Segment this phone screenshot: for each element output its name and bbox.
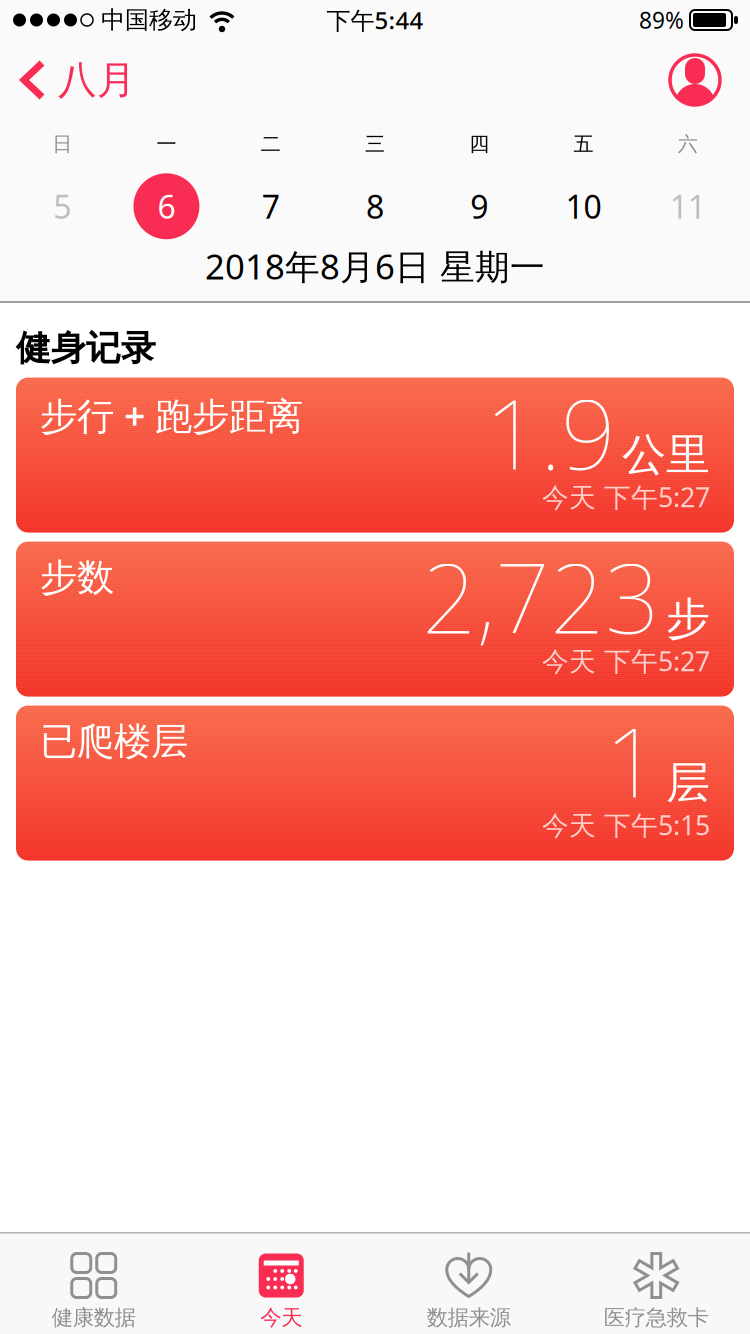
staticText: 层 bbox=[666, 756, 710, 810]
staticText: 步行 + 跑步距离 bbox=[40, 391, 303, 440]
staticText: 11 bbox=[670, 185, 706, 227]
staticText: 日 bbox=[52, 132, 72, 156]
staticText: 下午5:44 bbox=[326, 4, 423, 36]
staticText: 1.9 bbox=[485, 369, 616, 496]
button[interactable]: 医疗急救卡 bbox=[562, 1253, 750, 1331]
staticText: 9 bbox=[470, 185, 488, 227]
button[interactable]: 五 bbox=[531, 121, 636, 239]
staticText: 2,723 bbox=[422, 533, 660, 660]
staticText: 五 bbox=[574, 132, 594, 156]
staticText: 公里 bbox=[622, 428, 710, 482]
button[interactable]: 今天 bbox=[187, 1253, 375, 1331]
staticText: 二 bbox=[261, 132, 281, 156]
staticText: 八月 bbox=[58, 56, 136, 104]
button[interactable]: 健康数据 bbox=[0, 1253, 187, 1331]
button[interactable]: 健康资料 bbox=[670, 55, 750, 105]
staticText: 健康数据 bbox=[52, 1304, 136, 1331]
staticText: 四 bbox=[469, 132, 489, 156]
button[interactable]: 数据来源 bbox=[375, 1253, 562, 1331]
staticText: 今天 下午5:27 bbox=[542, 479, 710, 515]
button[interactable]: 一 bbox=[114, 121, 219, 239]
staticText: 中国移动 bbox=[101, 5, 197, 35]
staticText: 5 bbox=[53, 185, 71, 227]
staticText: 步数 bbox=[40, 555, 114, 600]
staticText: 三 bbox=[365, 132, 385, 156]
staticText: 6 bbox=[157, 185, 175, 227]
staticText: 步 bbox=[666, 592, 710, 646]
button[interactable]: 日 bbox=[10, 121, 114, 239]
button[interactable]: 步行 + 跑步距离 bbox=[0, 378, 750, 533]
staticText: 8 bbox=[366, 185, 384, 227]
button[interactable]: 三 bbox=[323, 121, 427, 239]
staticText: 10 bbox=[566, 185, 602, 227]
button[interactable]: 步数 bbox=[0, 542, 750, 697]
staticText: 一 bbox=[156, 132, 176, 156]
staticText: 1 bbox=[605, 697, 660, 824]
button[interactable]: 二 bbox=[219, 121, 323, 239]
staticText: 7 bbox=[262, 185, 280, 227]
staticText: 今天 下午5:15 bbox=[542, 807, 710, 843]
staticText: 已爬楼层 bbox=[40, 719, 188, 764]
button[interactable]: 四 bbox=[427, 121, 531, 239]
staticText: 医疗急救卡 bbox=[604, 1304, 709, 1331]
staticText: 89% bbox=[639, 5, 684, 35]
staticText: 数据来源 bbox=[427, 1304, 511, 1331]
staticText: 健身记录 bbox=[16, 327, 156, 370]
button[interactable]: 八月 bbox=[0, 56, 136, 104]
button[interactable]: 六 bbox=[636, 121, 740, 239]
staticText: 今天 下午5:27 bbox=[542, 643, 710, 679]
button[interactable]: 已爬楼层 bbox=[0, 706, 750, 861]
staticText: 2018年8月6日 星期一 bbox=[205, 243, 545, 289]
staticText: 六 bbox=[678, 132, 698, 156]
staticText: 今天 bbox=[260, 1304, 302, 1331]
